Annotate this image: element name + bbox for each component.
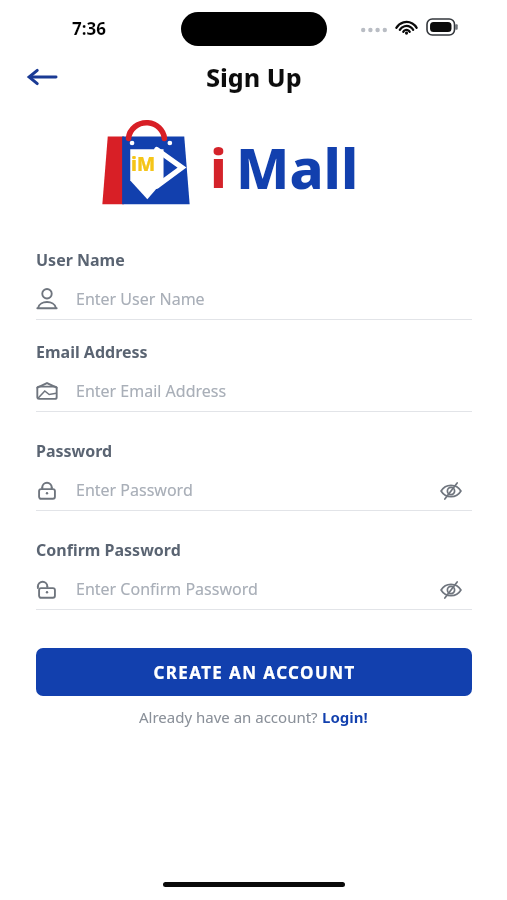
button[interactable]: Back <box>18 55 66 99</box>
staticText: i <box>210 130 227 204</box>
staticText: User Name <box>36 249 125 271</box>
button[interactable]: Enter Email Address <box>36 371 472 411</box>
staticText: Enter User Name <box>76 288 205 310</box>
staticText: Password <box>36 440 113 462</box>
staticText: Enter Confirm Password <box>76 578 258 600</box>
staticText: Sign Up <box>206 60 302 94</box>
staticText: Confirm Password <box>36 539 181 561</box>
staticText: Already have an account? <box>139 707 322 727</box>
button[interactable]: Login! <box>322 707 368 727</box>
button[interactable]: Enter User Name <box>36 279 472 319</box>
button[interactable]: Show password <box>436 575 466 605</box>
staticText: CREATE AN ACCOUNT <box>153 661 356 684</box>
staticText: 7:36 <box>72 17 106 40</box>
staticText: Email Address <box>36 341 148 363</box>
button[interactable]: CREATE AN ACCOUNT <box>36 648 472 696</box>
button[interactable]: Show password <box>436 476 466 506</box>
staticText: iM <box>131 151 156 177</box>
staticText: Mall <box>236 129 359 205</box>
staticText: Login! <box>322 707 368 727</box>
staticText: Enter Email Address <box>76 380 227 402</box>
button[interactable]: Enter Confirm Password <box>36 569 472 609</box>
staticText: Enter Password <box>76 479 193 501</box>
button[interactable]: Enter Password <box>36 470 472 510</box>
